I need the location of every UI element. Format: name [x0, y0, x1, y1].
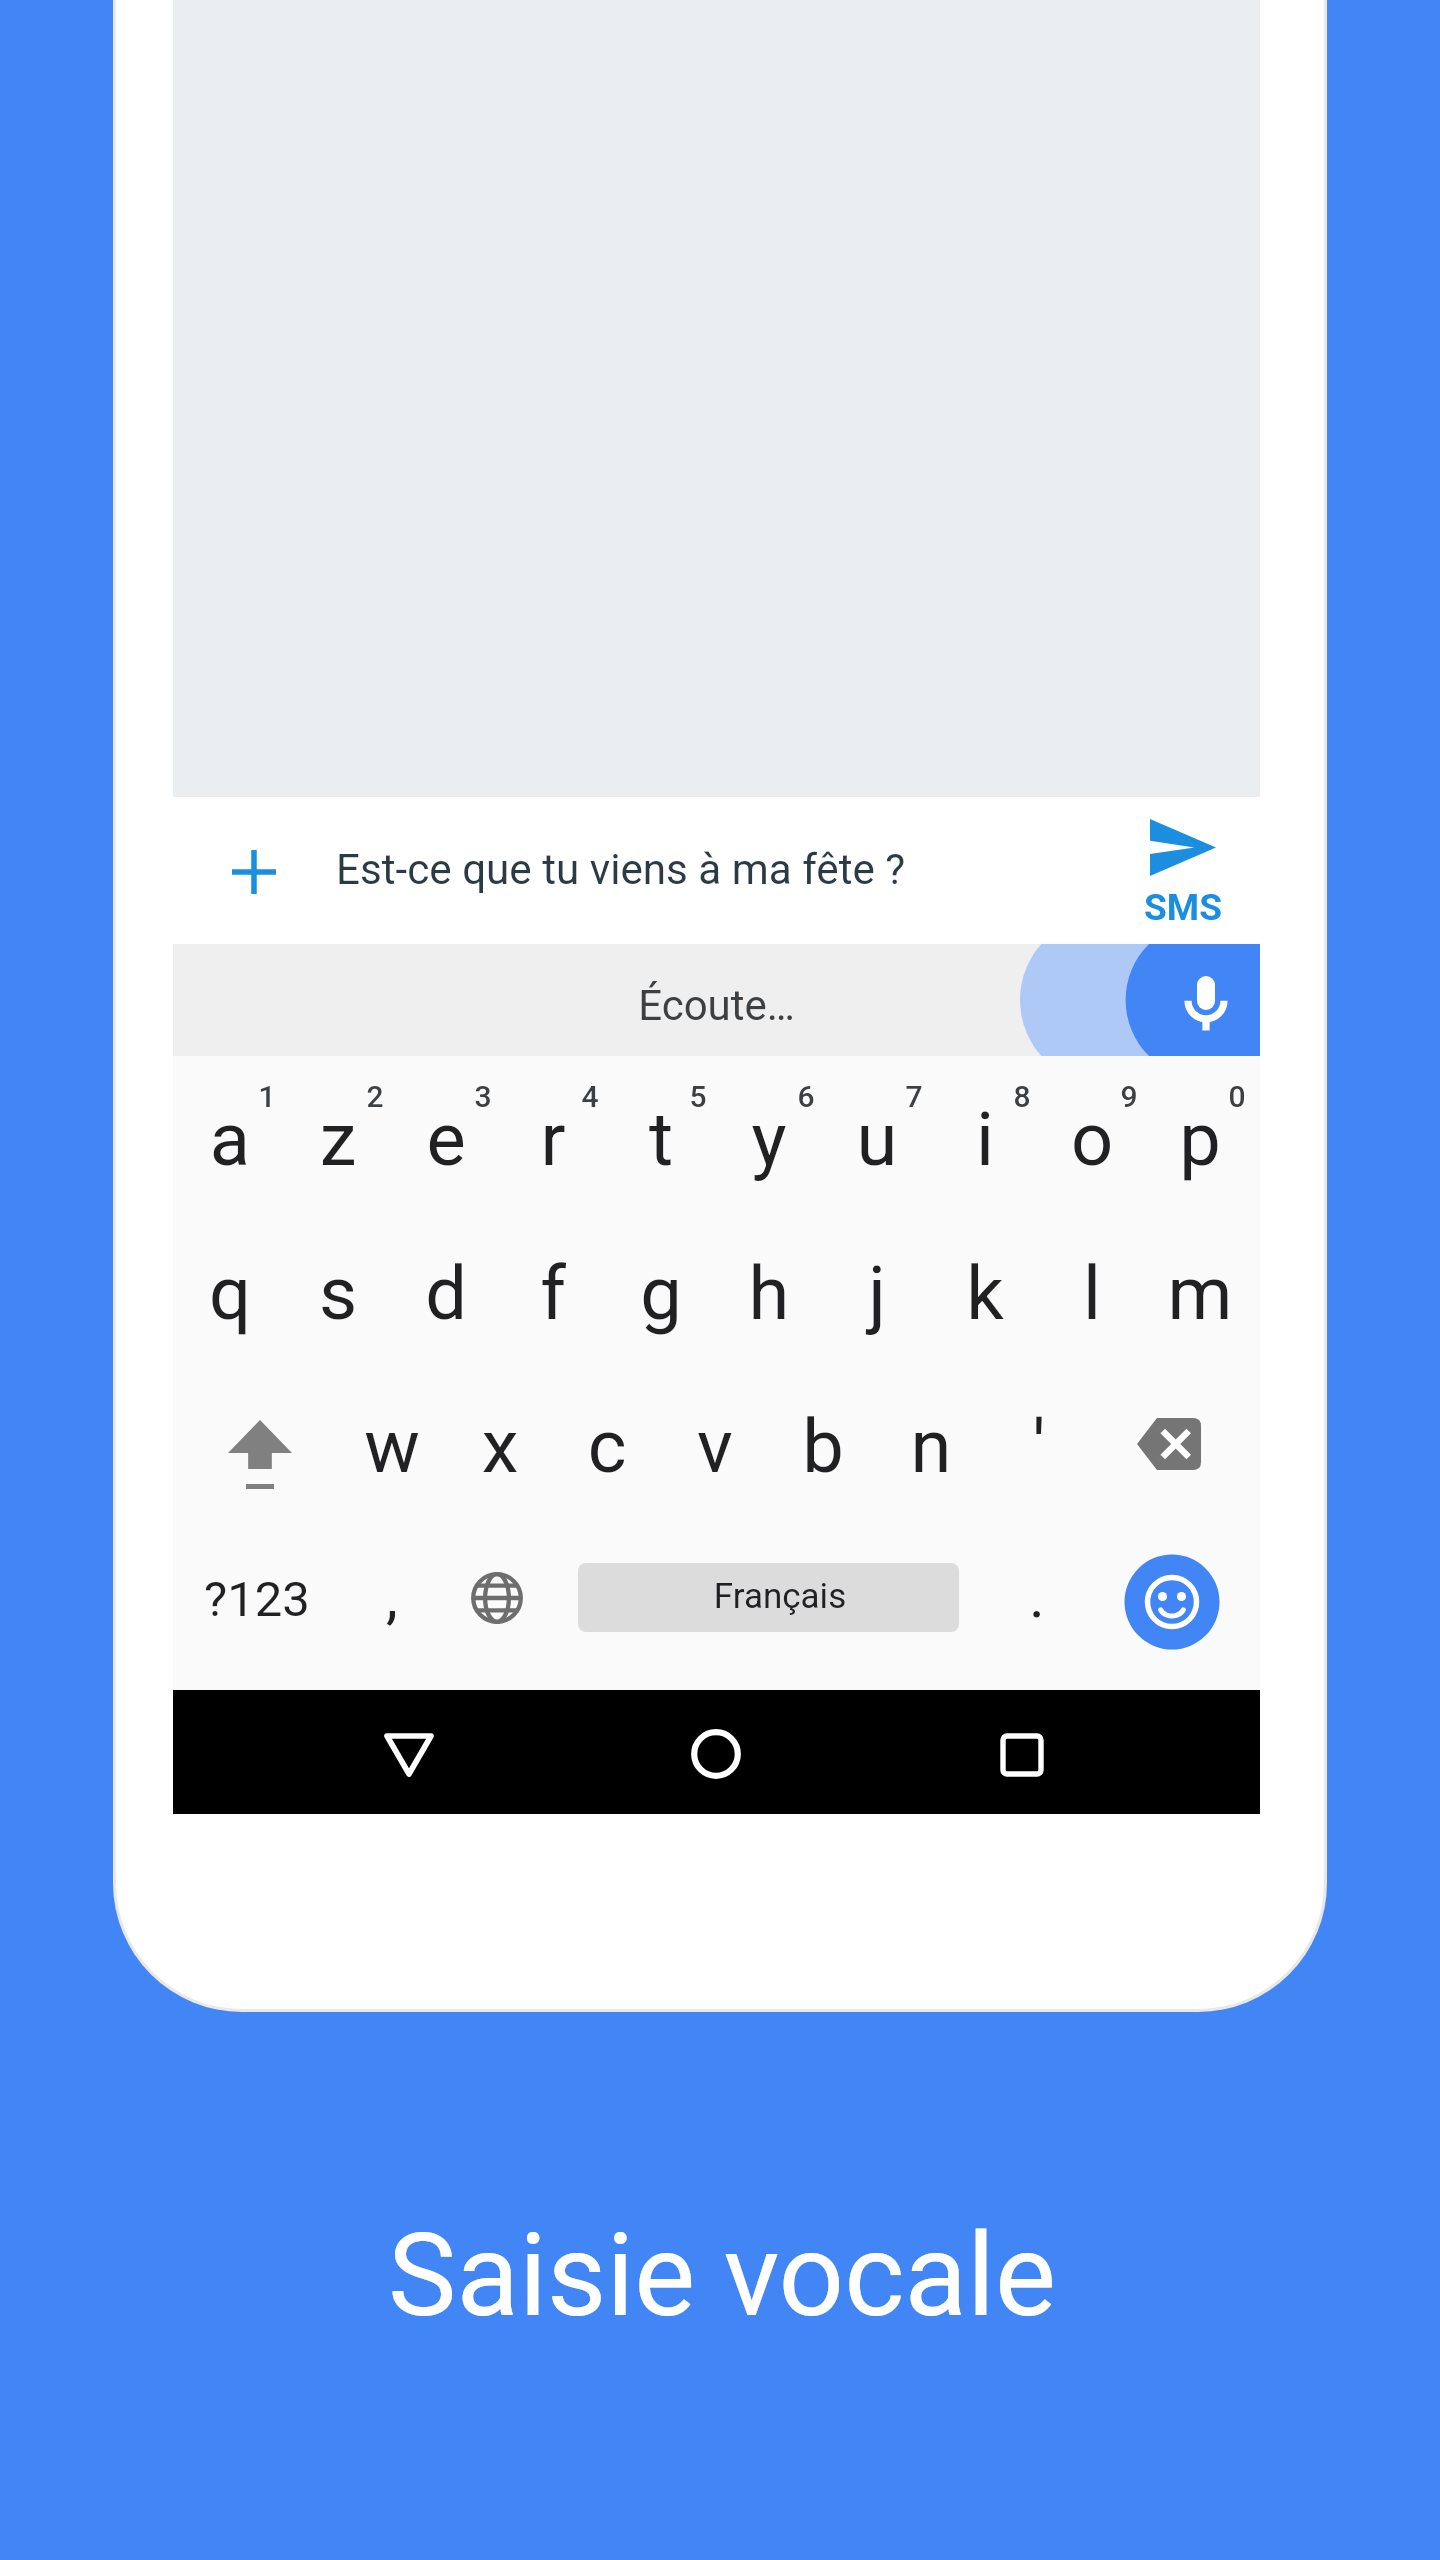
staticText: m: [1146, 1250, 1254, 1337]
button[interactable]: Voice input: [1150, 944, 1260, 1056]
button[interactable]: ?123: [176, 1524, 338, 1678]
button[interactable]: Recent apps: [950, 1690, 1094, 1814]
button[interactable]: ': [985, 1370, 1093, 1524]
staticText: s: [284, 1250, 392, 1337]
button[interactable]: q: [176, 1217, 284, 1371]
staticText: 0: [1204, 1079, 1270, 1114]
button[interactable]: i: [931, 1063, 1039, 1217]
button[interactable]: r: [499, 1063, 607, 1217]
button[interactable]: d: [392, 1217, 500, 1371]
staticText: k: [931, 1250, 1039, 1337]
button[interactable]: Change language: [446, 1524, 554, 1678]
staticText: o: [1038, 1096, 1146, 1183]
button[interactable]: k: [931, 1217, 1039, 1371]
staticText: a: [176, 1096, 284, 1183]
button[interactable]: Français: [578, 1563, 959, 1632]
button[interactable]: f: [499, 1217, 607, 1371]
staticText: 3: [450, 1079, 516, 1114]
button[interactable]: Emoji: [1118, 1524, 1226, 1678]
button[interactable]: z: [284, 1063, 392, 1217]
staticText: ,: [338, 1561, 446, 1631]
button[interactable]: p: [1146, 1063, 1254, 1217]
staticText: 9: [1096, 1079, 1162, 1114]
staticText: d: [392, 1250, 500, 1337]
staticText: b: [769, 1403, 877, 1490]
button[interactable]: g: [607, 1217, 715, 1371]
staticText: x: [446, 1403, 554, 1490]
staticText: z: [284, 1096, 392, 1183]
staticText: t: [607, 1096, 715, 1183]
button[interactable]: .: [983, 1524, 1091, 1678]
staticText: f: [499, 1250, 607, 1337]
button[interactable]: a: [176, 1063, 284, 1217]
button[interactable]: Back: [337, 1690, 481, 1814]
staticText: j: [823, 1250, 931, 1337]
button[interactable]: s: [284, 1217, 392, 1371]
button[interactable]: w: [338, 1370, 446, 1524]
staticText: c: [553, 1403, 661, 1490]
staticText: 8: [989, 1079, 1055, 1114]
button[interactable]: ,: [338, 1524, 446, 1678]
staticText: g: [607, 1250, 715, 1337]
button[interactable]: t: [607, 1063, 715, 1217]
button[interactable]: m: [1146, 1217, 1254, 1371]
button[interactable]: x: [446, 1370, 554, 1524]
staticText: h: [715, 1250, 823, 1337]
button[interactable]: y: [715, 1063, 823, 1217]
staticText: y: [715, 1096, 823, 1183]
staticText: p: [1146, 1096, 1254, 1183]
staticText: q: [176, 1250, 284, 1337]
staticText: Saisie vocale: [2, 2208, 1440, 2343]
staticText: Français: [590, 1576, 959, 1617]
button[interactable]: c: [553, 1370, 661, 1524]
button[interactable]: Shift: [176, 1370, 338, 1524]
button[interactable]: h: [715, 1217, 823, 1371]
staticText: 6: [773, 1079, 839, 1114]
button[interactable]: v: [661, 1370, 769, 1524]
staticText: w: [338, 1403, 446, 1490]
staticText: n: [877, 1403, 985, 1490]
button[interactable]: Backspace: [1092, 1370, 1254, 1524]
staticText: 4: [557, 1079, 623, 1114]
staticText: SMS: [1130, 886, 1236, 929]
button[interactable]: Add attachment: [211, 829, 296, 914]
button[interactable]: j: [823, 1217, 931, 1371]
staticText: l: [1038, 1250, 1146, 1337]
staticText: e: [392, 1096, 500, 1183]
staticText: i: [931, 1096, 1039, 1183]
button[interactable]: o: [1038, 1063, 1146, 1217]
button[interactable]: l: [1038, 1217, 1146, 1371]
staticText: Écoute…: [173, 981, 1260, 1030]
button[interactable]: b: [769, 1370, 877, 1524]
button[interactable]: u: [823, 1063, 931, 1217]
staticText: .: [983, 1561, 1091, 1631]
staticText: v: [661, 1403, 769, 1490]
staticText: 1: [234, 1079, 300, 1114]
button[interactable]: e: [392, 1063, 500, 1217]
button[interactable]: n: [877, 1370, 985, 1524]
button[interactable]: Home: [644, 1690, 788, 1814]
staticText: 2: [342, 1079, 408, 1114]
staticText: 5: [665, 1079, 731, 1114]
staticText: 7: [881, 1079, 947, 1114]
staticText: ': [985, 1403, 1093, 1490]
staticText: ?123: [176, 1571, 338, 1628]
staticText: Est-ce que tu viens à ma fête ?: [336, 845, 1036, 894]
button[interactable]: Send SMS: [1130, 805, 1236, 935]
staticText: r: [499, 1096, 607, 1183]
staticText: u: [823, 1096, 931, 1183]
